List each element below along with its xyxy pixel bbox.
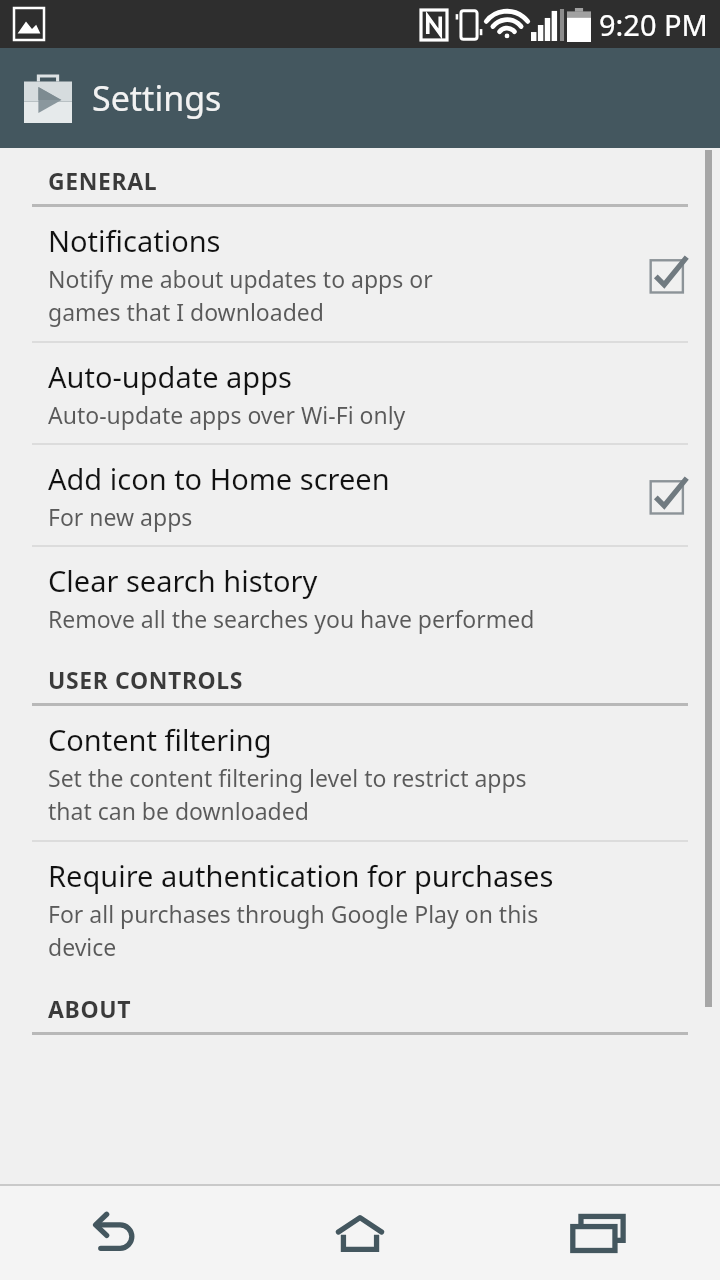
staticText: For all purchases through Google Play on… [48,898,539,963]
staticText: ABOUT [48,993,132,1024]
button[interactable]: Content filtering [0,706,720,840]
staticText: Set the content filtering level to restr… [48,762,527,827]
button[interactable]: Toggle setting [644,470,696,522]
staticText: GENERAL [48,165,158,196]
staticText: Auto-update apps over Wi-Fi only [48,399,406,430]
staticText: Remove all the searches you have perform… [48,603,535,634]
button[interactable]: Back [0,1186,240,1280]
staticText: Require authentication for purchases [48,856,554,895]
staticText: USER CONTROLS [48,664,244,695]
button[interactable]: Recent apps [480,1186,720,1280]
staticText: Auto-update apps [48,357,292,396]
button[interactable]: Require authentication for purchases [0,842,720,976]
staticText: 9:20 PM [599,5,708,44]
staticText: Notify me about updates to apps or games… [48,263,433,328]
button[interactable]: Clear search history [0,547,720,647]
button[interactable]: Home [240,1186,480,1280]
staticText: Clear search history [48,561,318,600]
button[interactable]: Notifications [0,207,720,341]
button[interactable]: Auto-update apps [0,343,720,443]
staticText: Add icon to Home screen [48,459,390,498]
button[interactable]: Add icon to Home screen [0,445,720,545]
staticText: Notifications [48,221,221,260]
staticText: Settings [92,75,222,121]
staticText: Content filtering [48,720,272,759]
button[interactable]: Settings [0,48,720,148]
button[interactable]: Toggle setting [644,249,696,301]
staticText: For new apps [48,501,193,532]
